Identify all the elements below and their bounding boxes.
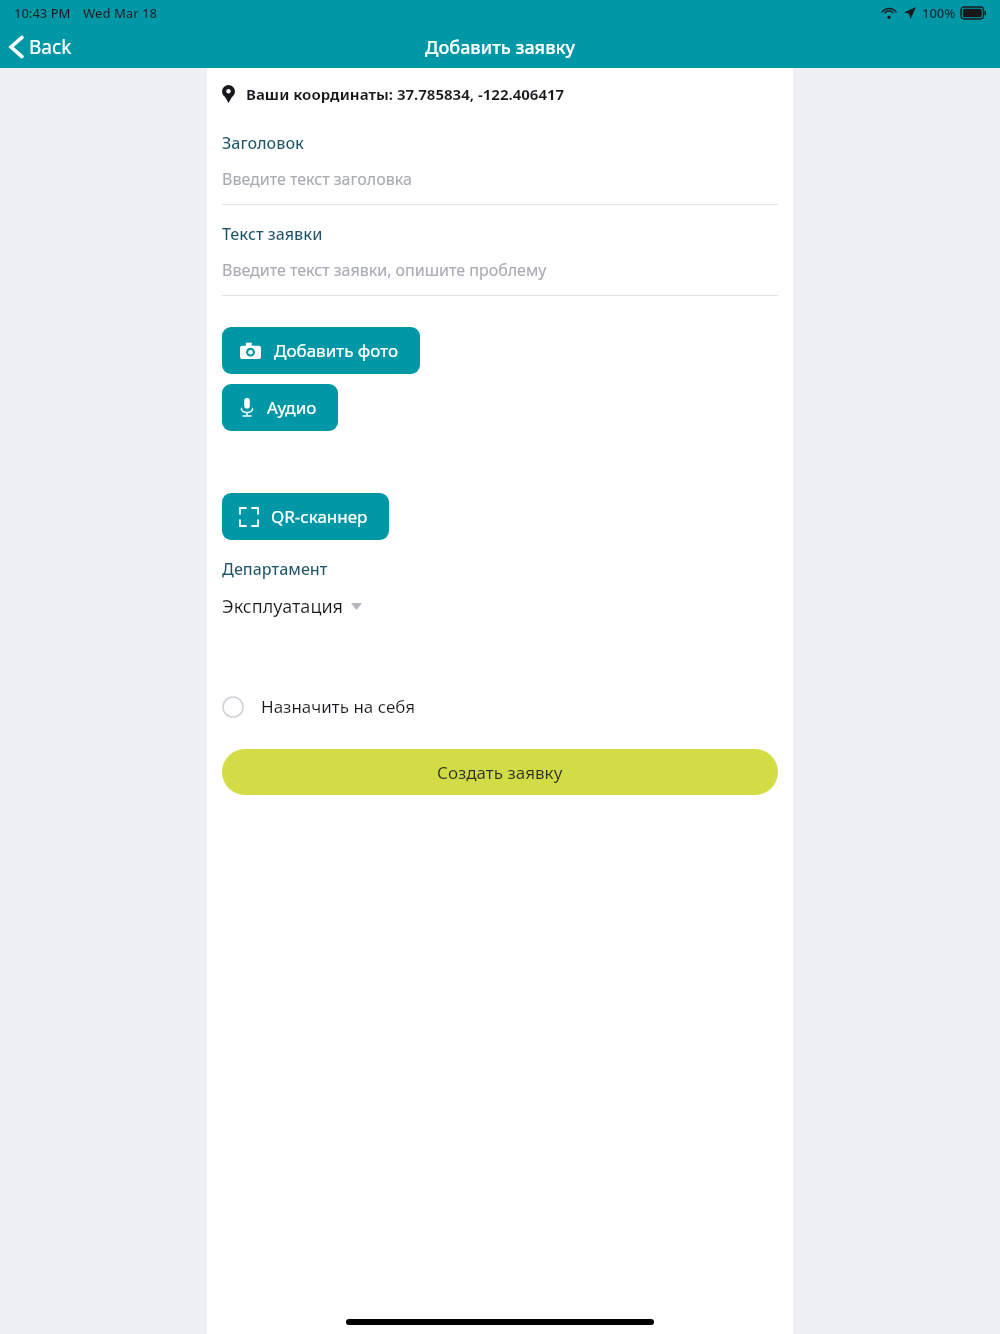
staticText: Создать заявку <box>437 761 563 784</box>
other: Камера <box>240 342 261 359</box>
staticText: Текст заявки <box>222 223 323 245</box>
staticText: Заголовок <box>222 132 304 154</box>
button[interactable]: Введите текст заголовка <box>207 168 793 190</box>
button[interactable]: Камера <box>222 327 420 374</box>
staticText: Департамент <box>222 558 328 580</box>
staticText: Ваши координаты: 37.785834, -122.406417 <box>246 84 565 104</box>
button[interactable]: Назначить на себя <box>207 689 430 724</box>
button[interactable]: Back <box>0 26 84 68</box>
other: QR сканнер <box>240 508 258 526</box>
staticText: Назначить на себя <box>261 695 416 718</box>
staticText: Добавить заявку <box>425 35 575 60</box>
button[interactable]: Микрофон <box>222 384 338 431</box>
button[interactable]: Эксплуатация <box>207 594 362 619</box>
staticText: Добавить фото <box>274 339 399 362</box>
staticText: QR-сканнер <box>271 505 368 528</box>
staticText: Введите текст заголовка <box>222 168 412 190</box>
staticText: Введите текст заявки, опишите проблему <box>222 259 547 281</box>
button[interactable]: Создать заявку <box>222 749 778 795</box>
staticText: Wed Mar 18 <box>83 4 157 22</box>
button[interactable]: QR сканнер <box>222 493 389 540</box>
button[interactable]: Введите текст заявки, опишите проблему <box>207 259 793 281</box>
other: Микрофон <box>240 398 254 417</box>
staticText: Эксплуатация <box>222 594 343 619</box>
staticText: Аудио <box>267 396 317 419</box>
staticText: 10:43 PM <box>14 4 71 22</box>
staticText: 100% <box>922 4 956 22</box>
staticText: Back <box>29 34 72 60</box>
